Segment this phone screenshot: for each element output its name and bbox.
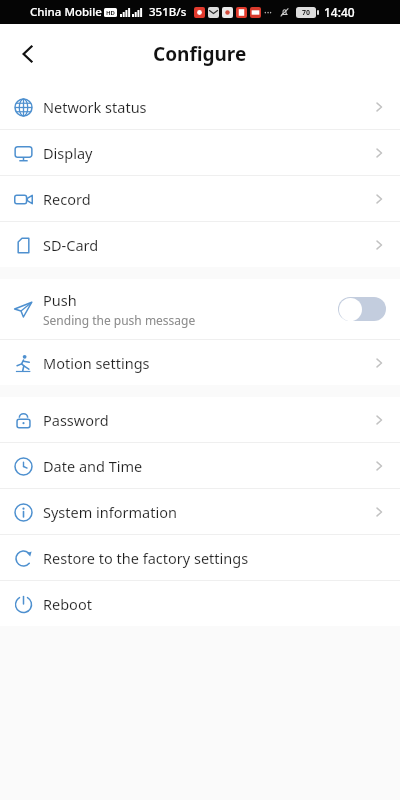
button[interactable]: Record [0,176,400,221]
button[interactable]: Push [0,279,400,339]
staticText: Record [43,189,91,209]
button[interactable]: Motion settings [0,340,400,385]
button[interactable]: Display [0,130,400,175]
staticText: Motion settings [43,353,150,373]
button[interactable]: Date and Time [0,443,400,488]
button[interactable]: Restore to the factory settings [0,535,400,580]
staticText: Password [43,410,109,430]
staticText: Restore to the factory settings [43,548,249,568]
staticText: System information [43,502,177,522]
button[interactable]: System information [0,489,400,534]
staticText: 70 [302,8,311,18]
staticText: Display [43,143,93,163]
button[interactable]: Push toggle [338,296,386,322]
staticText: Reboot [43,594,92,614]
button[interactable]: Password [0,397,400,442]
staticText: Network status [43,97,147,117]
staticText: SD-Card [43,235,99,255]
button[interactable]: Network status [0,84,400,129]
button[interactable]: Back [6,32,50,76]
staticText: China Mobile [30,4,102,20]
button[interactable]: Reboot [0,581,400,626]
staticText: 351B/s [149,4,187,20]
staticText: 14:40 [324,4,355,20]
button[interactable]: SD-Card [0,222,400,267]
staticText: Date and Time [43,456,143,476]
staticText: Sending the push message [43,312,196,328]
staticText: HD [106,9,115,17]
staticText: Push [43,290,77,310]
staticText: ··· [264,5,273,19]
staticText: Configure [153,41,247,67]
